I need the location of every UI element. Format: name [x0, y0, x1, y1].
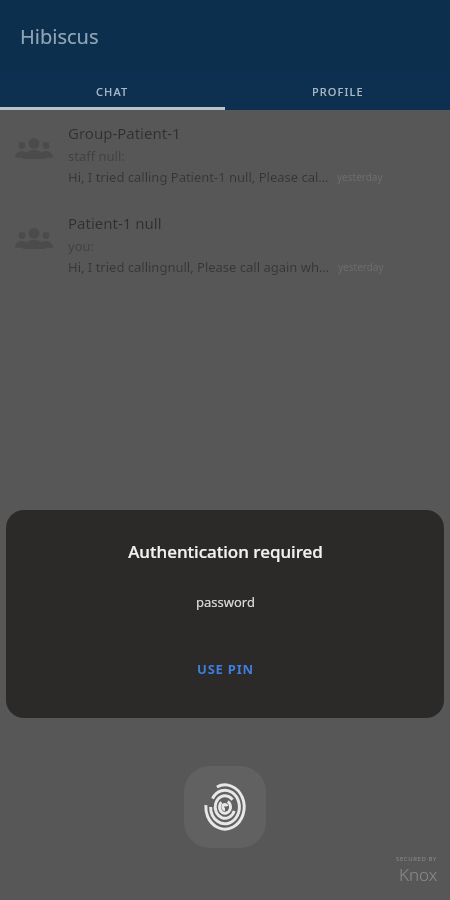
- staticText: yesterday: [337, 170, 383, 184]
- staticText: staff null:: [68, 147, 125, 165]
- staticText: Hibiscus: [20, 23, 99, 50]
- staticText: Knox: [399, 863, 438, 886]
- button[interactable]: Scan fingerprint: [184, 766, 266, 848]
- staticText: CHAT: [96, 84, 129, 99]
- staticText: PROFILE: [312, 84, 364, 99]
- staticText: USE PIN: [197, 660, 254, 678]
- button[interactable]: Group-Patient-1: [0, 113, 450, 203]
- staticText: yesterday: [338, 260, 384, 274]
- staticText: Group-Patient-1: [68, 123, 181, 143]
- staticText: Hi, I tried callingnull, Please call aga…: [68, 258, 330, 276]
- staticText: SECURED BY: [396, 855, 438, 863]
- button[interactable]: CHAT: [0, 72, 225, 110]
- staticText: Hi, I tried calling Patient-1 null, Plea…: [68, 168, 329, 186]
- staticText: password: [196, 593, 255, 611]
- staticText: Authentication required: [128, 540, 323, 563]
- button[interactable]: Patient-1 null: [0, 203, 450, 293]
- button[interactable]: USE PIN: [183, 655, 268, 683]
- staticText: Patient-1 null: [68, 213, 162, 233]
- button[interactable]: PROFILE: [225, 72, 450, 110]
- staticText: you:: [68, 237, 95, 255]
